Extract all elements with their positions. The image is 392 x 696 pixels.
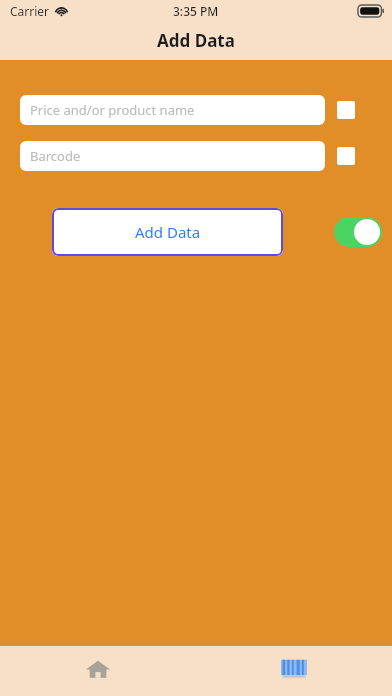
- button[interactable]: Price and/or product name: [20, 95, 325, 125]
- button[interactable]: Toggle: [334, 217, 382, 247]
- button[interactable]: Add Data: [52, 208, 283, 256]
- staticText: Price and/or product name: [30, 101, 195, 119]
- staticText: 3:35 PM: [173, 3, 219, 19]
- button[interactable]: Checkbox: [337, 101, 355, 119]
- button[interactable]: Barcode scanner: [196, 646, 392, 696]
- button[interactable]: Home: [0, 646, 196, 696]
- staticText: Carrier: [10, 3, 50, 19]
- button[interactable]: Checkbox: [337, 147, 355, 165]
- staticText: Add Data: [157, 29, 235, 52]
- staticText: Barcode: [30, 147, 81, 165]
- button[interactable]: Barcode: [20, 141, 325, 171]
- staticText: Add Data: [135, 222, 201, 242]
